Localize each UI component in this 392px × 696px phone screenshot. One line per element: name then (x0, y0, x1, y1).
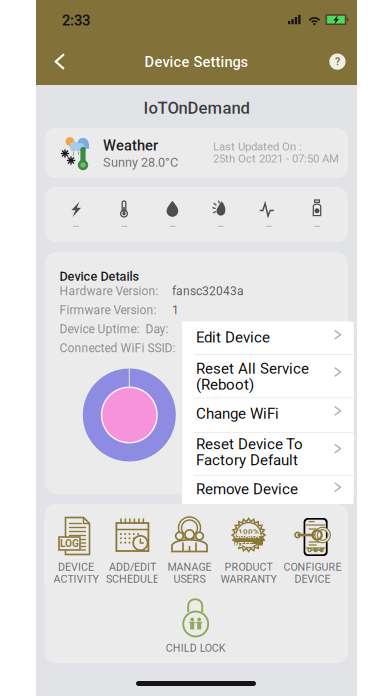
button[interactable]: Edit Device (182, 321, 353, 354)
staticText: IoTOnDemand (143, 98, 249, 118)
staticText: MANAGE (167, 561, 211, 573)
staticText: DEVICE (58, 561, 94, 573)
staticText: DEVICE (295, 573, 331, 585)
staticText: CONFIGURE (284, 561, 342, 573)
button[interactable]: Sensor reading (148, 187, 196, 242)
staticText: WARRANTY (221, 573, 277, 585)
button[interactable]: Sensor reading (52, 187, 100, 242)
staticText: ? (335, 55, 340, 68)
staticText: Firmware Version: (59, 303, 156, 317)
button[interactable]: CHILD LOCK (161, 598, 231, 656)
button[interactable]: Reset All Service (182, 354, 353, 397)
staticText: -- (266, 219, 272, 233)
button[interactable]: CONFIGURE (281, 516, 345, 586)
staticText: Factory Default (196, 451, 298, 469)
staticText: Device Uptime: Day: (59, 322, 168, 336)
staticText: Reset Device To (196, 435, 303, 453)
staticText: Weather (103, 137, 158, 154)
staticText: Edit Device (196, 329, 270, 346)
button[interactable]: MANAGE (157, 516, 221, 586)
staticText: Last Updated On : (213, 140, 302, 153)
staticText: ACTIVITY (53, 573, 98, 585)
staticText: (Reboot) (196, 376, 254, 393)
staticText: -- (218, 219, 224, 233)
staticText: PRODUCT (225, 561, 273, 573)
staticText: -- (169, 219, 175, 233)
button[interactable]: Change WiFi (182, 397, 353, 432)
staticText: fansc32043a (172, 284, 244, 298)
staticText: SCHEDULE (106, 573, 159, 585)
staticText: 25th Oct 2021 - 07:50 AM (213, 152, 339, 165)
staticText: CHILD LOCK (166, 642, 226, 654)
button[interactable]: 100% (217, 516, 281, 586)
button[interactable]: Remove Device (182, 475, 353, 504)
button[interactable]: LOG (44, 516, 108, 586)
staticText: Sunny 28.0°C (103, 155, 178, 170)
staticText: Reset All Service (196, 360, 309, 377)
button[interactable]: Sensor reading (197, 187, 245, 242)
staticText: Connected WiFi SSID: (59, 341, 175, 355)
button[interactable]: Help (329, 53, 346, 70)
staticText: Hardware Version: (59, 284, 158, 298)
staticText: 1 (172, 303, 179, 317)
staticText: Device Details (59, 269, 139, 284)
staticText: USERS (173, 573, 205, 585)
staticText: Remove Device (196, 480, 298, 498)
button[interactable]: Reset Device To (182, 432, 353, 475)
staticText: -- (121, 219, 127, 233)
staticText: 100% (238, 527, 259, 536)
button[interactable]: Sensor reading (100, 187, 148, 242)
button[interactable]: ADD/EDIT (100, 516, 164, 586)
button[interactable]: Sensor reading (245, 187, 293, 242)
staticText: Change WiFi (196, 405, 279, 422)
staticText: -- (314, 219, 320, 233)
staticText: GUARANTEE (235, 531, 263, 549)
staticText: 2:33 (62, 12, 90, 29)
staticText: -- (73, 219, 79, 233)
staticText: LOG (60, 538, 79, 549)
button[interactable]: Sensor reading (293, 187, 341, 242)
staticText: ADD/EDIT (109, 561, 156, 573)
button[interactable]: Back (43, 45, 77, 79)
staticText: Device Settings (144, 53, 248, 71)
